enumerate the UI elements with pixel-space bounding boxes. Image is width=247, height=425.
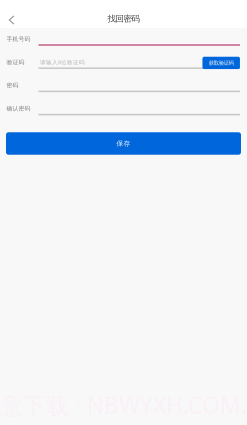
staticText: 保存 — [116, 139, 130, 148]
button[interactable]: Back — [0, 8, 24, 32]
button[interactable]: 保存 — [6, 132, 241, 155]
staticText: 验证码 — [6, 58, 24, 66]
staticText: 确认密码 — [6, 105, 30, 112]
staticText: 请输入6位验证码 — [40, 58, 85, 66]
staticText: 密码 — [6, 82, 18, 89]
staticText: 获取验证码 — [209, 59, 234, 66]
staticText: 找回密码 — [107, 13, 139, 24]
button[interactable]: 获取验证码 — [202, 57, 240, 69]
staticText: 手机号码 — [6, 35, 30, 43]
